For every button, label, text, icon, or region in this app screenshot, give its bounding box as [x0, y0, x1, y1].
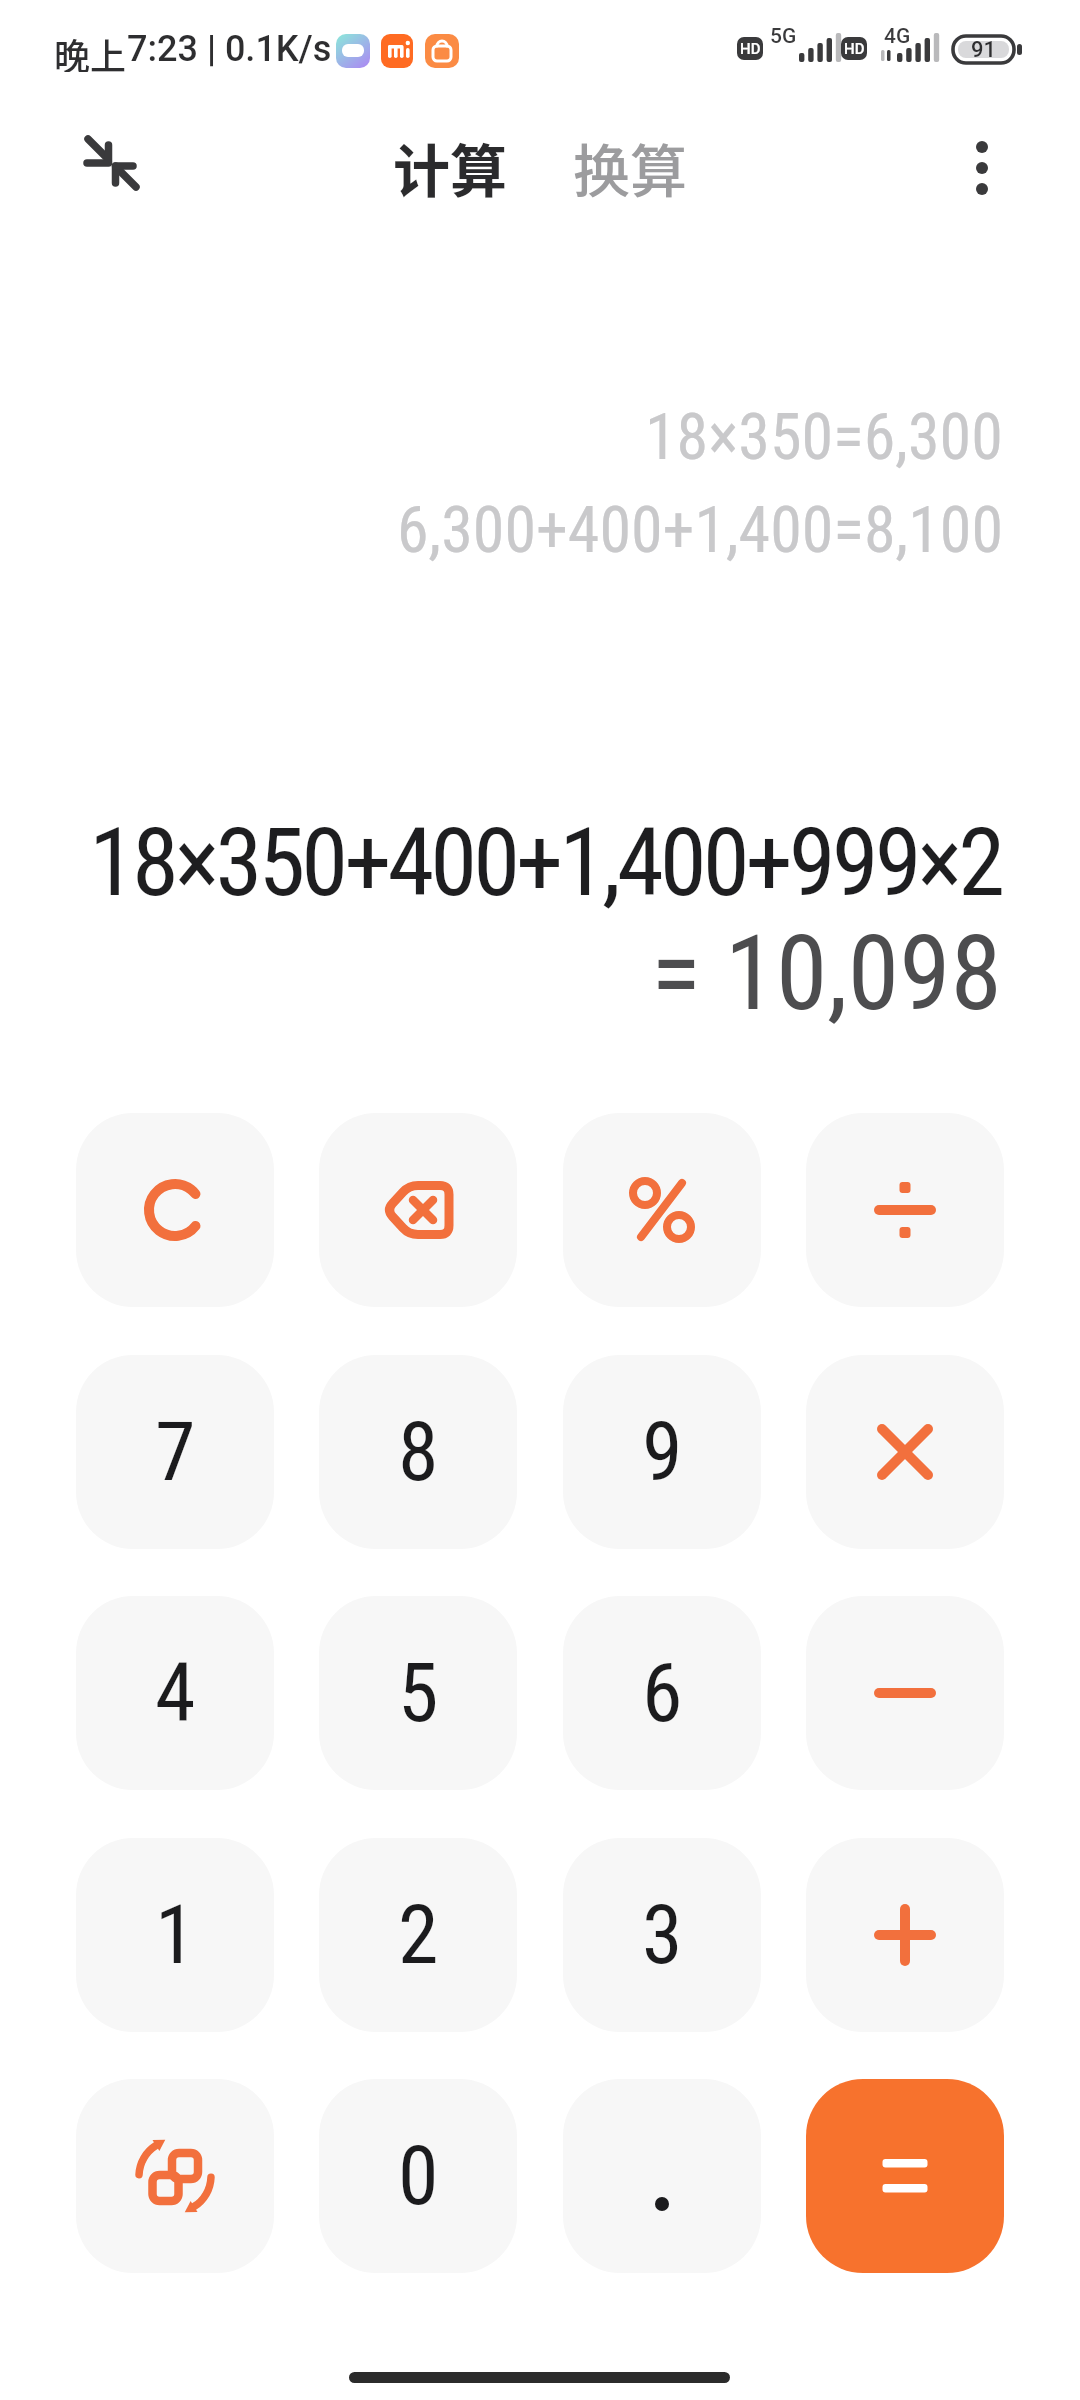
staticText: = 10,098	[651, 913, 1002, 1035]
button[interactable]: 3	[563, 1838, 761, 2032]
staticText: 3	[642, 1887, 683, 1983]
button[interactable]	[72, 124, 152, 204]
button[interactable]: 9	[563, 1355, 761, 1549]
button[interactable]: 4	[76, 1596, 274, 1790]
staticText: 2	[398, 1887, 439, 1983]
button[interactable]	[950, 130, 1014, 206]
button[interactable]	[563, 2079, 761, 2273]
staticText: 0	[398, 2128, 439, 2224]
button[interactable]: 计算	[393, 126, 507, 209]
staticText: 计算	[393, 126, 507, 209]
button[interactable]: 换算	[573, 126, 687, 209]
staticText: HD	[740, 40, 761, 58]
staticText: 5G	[770, 24, 797, 49]
button[interactable]	[806, 2079, 1004, 2273]
button[interactable]: 8	[319, 1355, 517, 1549]
staticText: 4G	[884, 24, 911, 49]
staticText: 5	[398, 1645, 439, 1741]
button[interactable]: 1	[76, 1838, 274, 2032]
button[interactable]	[806, 1113, 1004, 1307]
button[interactable]: 0	[319, 2079, 517, 2273]
staticText: 换算	[573, 126, 687, 209]
staticText: 7:23 | 0.1K/s	[127, 28, 332, 70]
staticText: 晚上	[54, 28, 127, 72]
button[interactable]: 7	[76, 1355, 274, 1549]
staticText: HD	[844, 40, 865, 58]
staticText: 18×350=6,300	[645, 400, 1003, 475]
staticText: 7	[155, 1404, 196, 1500]
button[interactable]	[319, 1113, 517, 1307]
button[interactable]	[806, 1355, 1004, 1549]
staticText: 6	[642, 1645, 683, 1741]
button[interactable]	[806, 1596, 1004, 1790]
button[interactable]	[806, 1838, 1004, 2032]
button[interactable]	[76, 2079, 274, 2273]
staticText: 4	[155, 1645, 196, 1741]
staticText: 1	[155, 1887, 196, 1983]
staticText: 18×350+400+1,400+999×2	[89, 807, 1002, 918]
staticText: 9	[642, 1404, 683, 1500]
button[interactable]	[76, 1113, 274, 1307]
staticText: 6,300+400+1,400=8,100	[397, 493, 1003, 568]
staticText: 91	[971, 37, 997, 63]
button[interactable]	[563, 1113, 761, 1307]
staticText: 8	[398, 1404, 439, 1500]
button[interactable]: 5	[319, 1596, 517, 1790]
button[interactable]: 2	[319, 1838, 517, 2032]
button[interactable]: 6	[563, 1596, 761, 1790]
